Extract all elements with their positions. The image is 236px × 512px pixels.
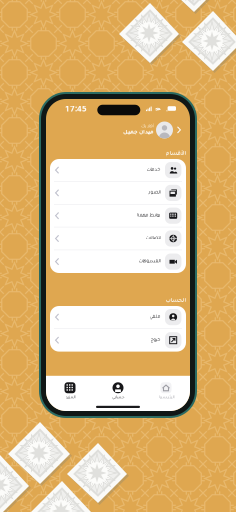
staticText: 17:45 — [65, 103, 87, 114]
staticText: أهلا بك — [140, 124, 153, 129]
button[interactable]: حسابي — [94, 379, 142, 403]
staticText: الصور — [148, 190, 160, 195]
staticText: الرئيسية — [158, 395, 174, 400]
staticText: حسابي — [111, 395, 124, 400]
button[interactable]: الرئيسية — [142, 379, 190, 403]
staticText: المزيد — [65, 395, 75, 400]
staticText: الأقسام — [165, 151, 186, 157]
button[interactable]: خروج — [50, 329, 186, 352]
button[interactable]: الصور — [50, 182, 186, 205]
staticText: اتصالات — [145, 236, 160, 241]
button[interactable]: اتصالات — [50, 227, 186, 250]
button[interactable]: أهلا بك — [46, 118, 190, 142]
staticText: روابط مهمة — [136, 213, 160, 218]
button[interactable]: الفيديوهات — [50, 250, 186, 273]
button[interactable]: خدمات — [50, 159, 186, 182]
staticText: ميدان جميل — [122, 130, 153, 136]
button[interactable]: روابط مهمة — [50, 205, 186, 227]
staticText: خدمات — [146, 168, 160, 173]
staticText: ملفي — [149, 315, 160, 320]
button[interactable]: المزيد — [46, 379, 94, 403]
staticText: خروج — [150, 338, 160, 343]
button[interactable]: ملفي — [50, 306, 186, 329]
staticText: الحساب — [165, 298, 186, 304]
staticText: الفيديوهات — [138, 259, 160, 264]
